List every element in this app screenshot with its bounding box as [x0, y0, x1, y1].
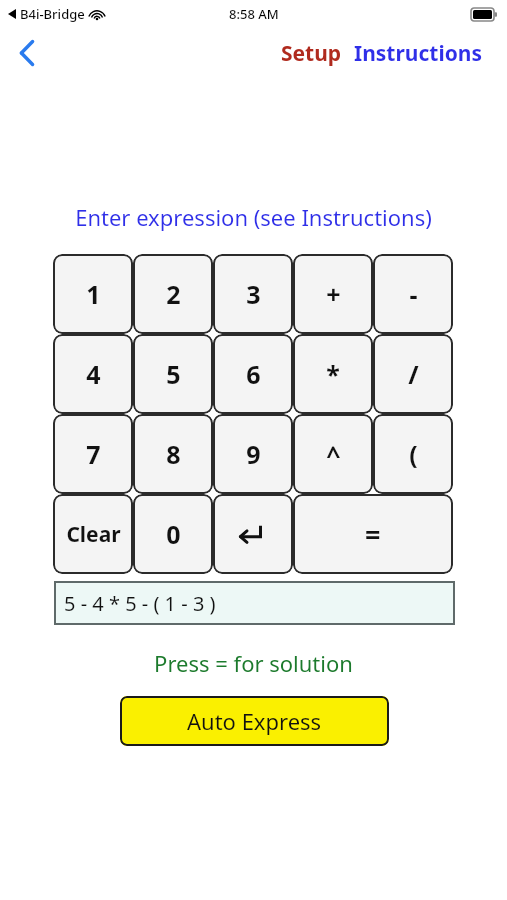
staticText: 3 [246, 277, 261, 311]
staticText: Instructions [354, 39, 483, 68]
staticText: 4 [86, 357, 101, 391]
button[interactable]: / [373, 334, 453, 414]
staticText: ^ [326, 437, 341, 471]
staticText: B4i-Bridge [20, 5, 85, 23]
staticText: 9 [246, 437, 261, 471]
button[interactable]: 1 [53, 254, 133, 334]
button[interactable]: 3 [213, 254, 293, 334]
staticText: + [326, 277, 341, 311]
staticText: ( [409, 437, 418, 471]
staticText: Auto Express [187, 706, 322, 736]
button[interactable]: 9 [213, 414, 293, 494]
staticText: Enter expression (see Instructions) [0, 202, 507, 232]
button[interactable]: ^ [293, 414, 373, 494]
staticText: Setup [281, 39, 342, 68]
button[interactable]: = [293, 494, 453, 574]
staticText: 8:58 AM [229, 5, 279, 23]
button[interactable]: Clear [53, 494, 133, 574]
button[interactable]: ( [373, 414, 453, 494]
button[interactable]: 6 [213, 334, 293, 414]
button[interactable]: 0 [133, 494, 213, 574]
button[interactable]: 8 [133, 414, 213, 494]
staticText: * [326, 357, 340, 391]
staticText: = [365, 516, 381, 553]
button[interactable]: Instructions [354, 39, 483, 68]
staticText: - [409, 277, 418, 311]
staticText: 5 - 4 * 5 - ( 1 - 3 ) [64, 590, 216, 617]
button[interactable]: + [293, 254, 373, 334]
button[interactable]: 7 [53, 414, 133, 494]
staticText: Press = for solution [0, 648, 507, 678]
button[interactable]: - [373, 254, 453, 334]
staticText: 2 [166, 277, 181, 311]
staticText: 7 [86, 437, 101, 471]
staticText: / [408, 357, 419, 391]
button[interactable]: 5 - 4 * 5 - ( 1 - 3 ) [54, 581, 455, 625]
staticText: 1 [86, 277, 101, 311]
button[interactable]: 2 [133, 254, 213, 334]
staticText: 5 [166, 357, 181, 391]
button[interactable]: Enter [213, 494, 293, 574]
staticText: 8 [166, 437, 181, 471]
staticText: 6 [246, 357, 261, 391]
staticText: 0 [166, 517, 181, 551]
button[interactable]: Back [6, 32, 48, 74]
button[interactable]: * [293, 334, 373, 414]
button[interactable]: 5 [133, 334, 213, 414]
staticText: Clear [66, 520, 121, 549]
button[interactable]: 4 [53, 334, 133, 414]
button[interactable]: Setup [281, 39, 342, 68]
button[interactable]: Auto Express [120, 696, 389, 746]
